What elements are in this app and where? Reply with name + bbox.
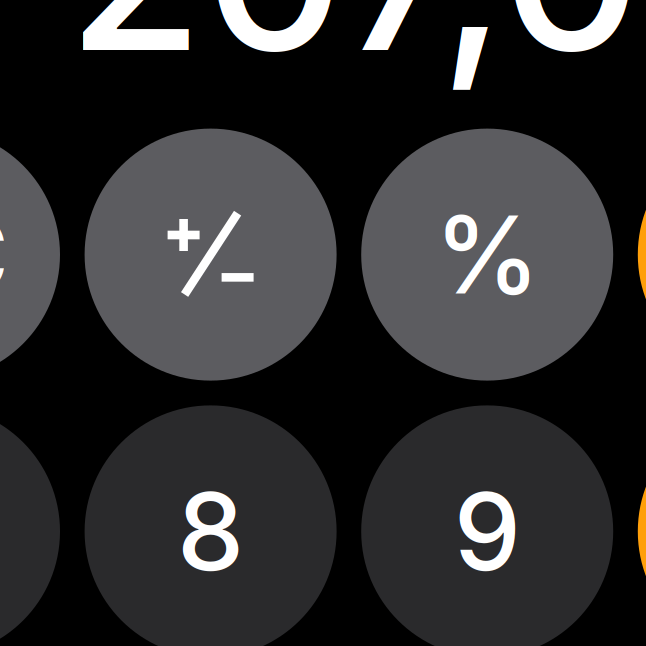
staticText: % [434, 190, 540, 319]
button[interactable]: % [361, 129, 613, 381]
button[interactable]: 9 [361, 405, 613, 646]
button[interactable]: ÷ [638, 129, 646, 381]
button[interactable]: 7 [0, 405, 60, 646]
button[interactable]: 8 [85, 405, 337, 646]
button[interactable]: × [638, 405, 646, 646]
staticText: 8 [177, 467, 244, 596]
button[interactable]: Positive negative [85, 129, 337, 381]
staticText: 9 [454, 467, 521, 596]
staticText: 207,0 [67, 0, 642, 103]
button[interactable]: AC [0, 129, 60, 381]
staticText: AC [0, 190, 9, 319]
